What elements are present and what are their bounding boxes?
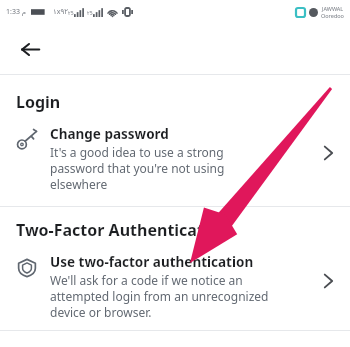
staticText: Ooredoo <box>321 12 344 19</box>
staticText: ٢5 <box>68 10 74 17</box>
staticText: م 1:33 <box>6 7 27 17</box>
staticText: ٢5 <box>87 10 93 17</box>
staticText: ١x٩٢ <box>53 7 68 17</box>
staticText: Two-Factor Authentication <box>16 219 230 241</box>
staticText: It's a good idea to use a strong passwor… <box>50 144 225 192</box>
staticText: Login <box>16 91 61 113</box>
staticText: Change password <box>50 125 169 143</box>
button[interactable]: Back <box>10 29 50 69</box>
button[interactable]: Use two-factor authentication <box>0 247 350 326</box>
staticText: We'll ask for a code if we notice an att… <box>50 272 269 320</box>
staticText: JAWWAL <box>322 5 344 12</box>
button[interactable]: Change password <box>0 119 350 198</box>
staticText: Use two-factor authentication <box>50 253 254 271</box>
